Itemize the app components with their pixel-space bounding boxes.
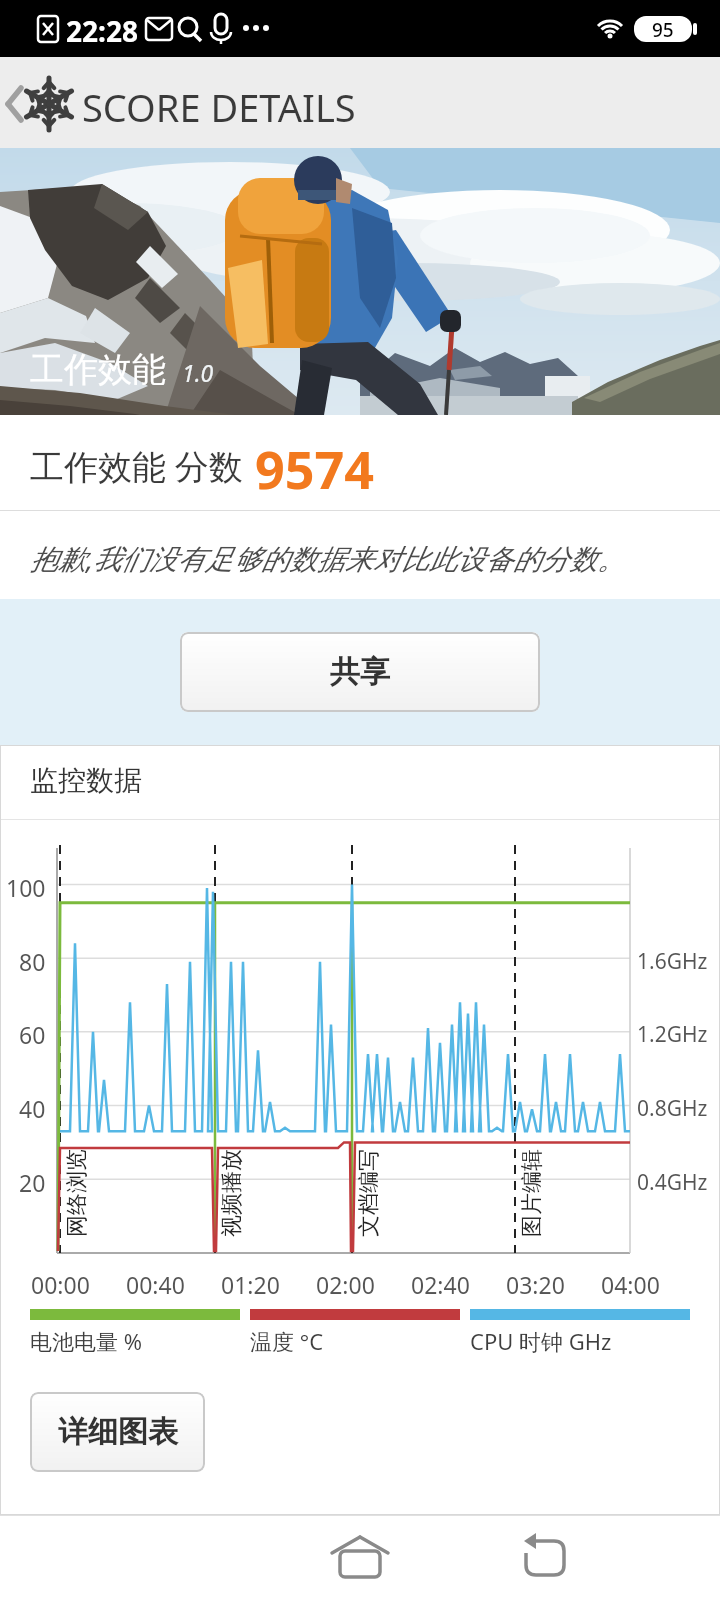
staticText: 00:40 <box>126 1269 185 1295</box>
staticText: 60 <box>19 1019 46 1045</box>
staticText: 详细图表 <box>58 1413 178 1451</box>
staticText: 00:00 <box>31 1269 90 1295</box>
staticText: 1.6GHz <box>637 947 708 976</box>
staticText: 02:00 <box>316 1269 375 1295</box>
button[interactable] <box>0 57 135 148</box>
staticText: 01:20 <box>221 1269 280 1295</box>
staticText: 电池电量 % <box>30 1326 143 1356</box>
staticText: 文档编写 <box>355 1149 381 1237</box>
staticText: 02:40 <box>411 1269 470 1295</box>
staticText: 视频播放 <box>218 1149 244 1237</box>
staticText: 工作效能 分数 <box>30 443 243 489</box>
button[interactable] <box>514 1531 578 1591</box>
staticText: 1.2GHz <box>637 1020 708 1049</box>
staticText: 1.0 <box>182 357 214 388</box>
button[interactable]: 共享 <box>180 632 540 712</box>
staticText: 22:28 <box>66 12 138 50</box>
staticText: 抱歉,我们没有足够的数据来对比此设备的分数。 <box>30 539 626 577</box>
staticText: 80 <box>19 946 46 972</box>
staticText: 0.8GHz <box>637 1094 708 1123</box>
staticText: 95 <box>652 17 674 41</box>
button[interactable] <box>324 1531 396 1591</box>
staticText: 100 <box>6 872 46 898</box>
staticText: 40 <box>19 1093 46 1119</box>
staticText: 温度 °C <box>250 1326 324 1356</box>
staticText: 04:00 <box>601 1269 660 1295</box>
staticText: 9574 <box>255 433 374 504</box>
staticText: 共享 <box>330 653 390 691</box>
staticText: SCORE DETAILS <box>82 81 356 133</box>
staticText: 网络浏览 <box>63 1149 89 1237</box>
staticText: 20 <box>19 1167 46 1193</box>
button[interactable]: 详细图表 <box>30 1392 205 1472</box>
staticText: 03:20 <box>506 1269 565 1295</box>
staticText: 监控数据 <box>30 763 142 798</box>
staticText: 图片编辑 <box>518 1149 544 1237</box>
staticText: 工作效能 <box>30 348 166 391</box>
staticText: CPU 时钟 GHz <box>470 1326 612 1356</box>
staticText: 0.4GHz <box>637 1168 708 1197</box>
